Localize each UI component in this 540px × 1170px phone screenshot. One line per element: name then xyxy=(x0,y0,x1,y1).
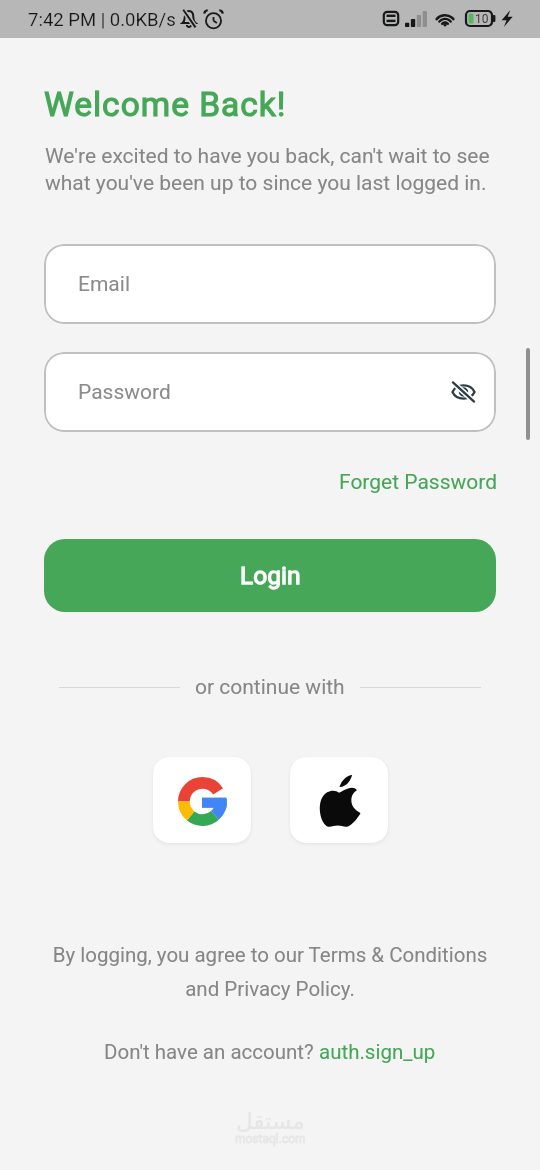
button[interactable]: auth.sign_up xyxy=(319,1040,436,1064)
button[interactable]: Login xyxy=(44,539,496,612)
button[interactable]: Forget Password xyxy=(335,462,502,503)
staticText: 7:42 PM | 0.0KB/s xyxy=(28,9,176,31)
staticText: or continue with xyxy=(195,675,345,700)
staticText: Login xyxy=(240,561,301,590)
staticText: By logging, you agree to our Terms & Con… xyxy=(52,943,488,1001)
staticText: مستقل xyxy=(236,1108,305,1135)
staticText: Password xyxy=(78,380,171,405)
button[interactable]: Sign in with Apple xyxy=(290,757,388,843)
staticText: Don't have an account? xyxy=(104,1040,319,1064)
button[interactable]: Email xyxy=(44,244,496,324)
button[interactable]: Sign in with Google xyxy=(153,757,251,843)
staticText: Forget Password xyxy=(339,470,498,495)
staticText: We're excited to have you back, can't wa… xyxy=(45,144,493,196)
button[interactable]: Password xyxy=(44,352,496,432)
button[interactable]: Toggle password visibility xyxy=(446,375,480,409)
staticText: Welcome Back! xyxy=(44,85,287,124)
staticText: Email xyxy=(78,272,130,297)
staticText: mostaql.com xyxy=(235,1132,306,1146)
staticText: 10 xyxy=(475,12,489,26)
